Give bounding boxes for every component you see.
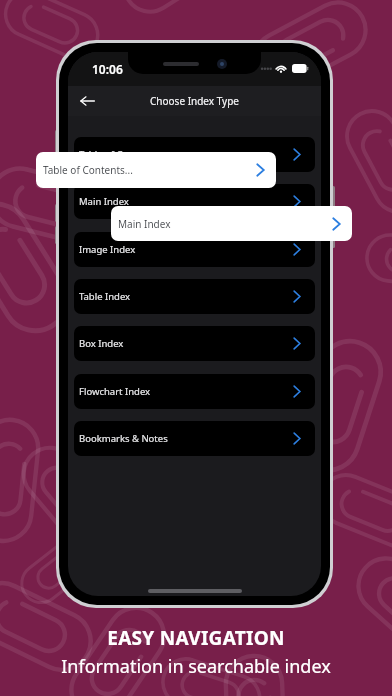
- staticText: Main Index: [118, 217, 171, 231]
- staticText: EASY NAVIGATION: [107, 625, 285, 651]
- staticText: Image Index: [79, 243, 136, 256]
- staticText: Table of Contents...: [79, 148, 165, 161]
- staticText: Choose Index Type: [150, 94, 239, 108]
- button[interactable]: Image Index: [74, 232, 315, 267]
- button[interactable]: Box Index: [74, 326, 315, 361]
- staticText: 10:06: [92, 61, 123, 77]
- staticText: Bookmarks & Notes: [79, 432, 168, 445]
- button[interactable]: Table of Contents...: [74, 137, 315, 172]
- staticText: Flowchart Index: [79, 385, 151, 398]
- staticText: Information in searchable index: [61, 654, 331, 679]
- staticText: Table Index: [79, 290, 131, 303]
- button[interactable]: Main Index: [111, 206, 352, 241]
- staticText: Main Index: [79, 195, 129, 208]
- staticText: Table of Contents...: [43, 163, 133, 177]
- button[interactable]: Bookmarks & Notes: [74, 421, 315, 456]
- button[interactable]: Table of Contents...: [36, 152, 276, 188]
- button[interactable]: Back: [74, 88, 100, 114]
- button[interactable]: Flowchart Index: [74, 374, 315, 409]
- staticText: Box Index: [79, 337, 124, 350]
- button[interactable]: Table Index: [74, 279, 315, 314]
- button[interactable]: Main Index: [74, 184, 315, 219]
